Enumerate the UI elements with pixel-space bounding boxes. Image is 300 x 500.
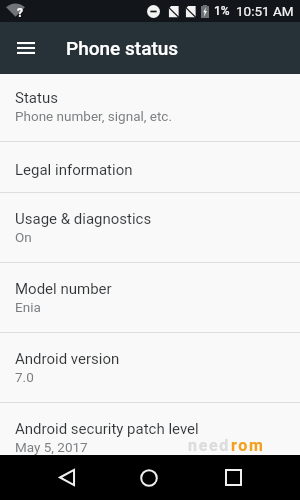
- button[interactable]: Back: [39, 455, 95, 500]
- staticText: Phone number, signal, etc.: [15, 108, 172, 124]
- button[interactable]: Android security patch level: [0, 403, 300, 472]
- staticText: May 5, 2017: [15, 439, 88, 455]
- button[interactable]: Open navigation drawer: [4, 26, 48, 70]
- staticText: 10:51 AM: [236, 3, 294, 19]
- button[interactable]: Recent apps: [205, 455, 261, 500]
- staticText: Android security patch level: [15, 420, 199, 438]
- staticText: Model number: [15, 280, 112, 298]
- staticText: On: [15, 229, 32, 245]
- button[interactable]: Model number: [0, 263, 300, 332]
- staticText: Enia: [15, 299, 41, 315]
- staticText: need: [188, 436, 231, 455]
- staticText: Phone status: [66, 37, 179, 59]
- staticText: Status: [15, 89, 58, 107]
- staticText: Usage & diagnostics: [15, 210, 152, 228]
- staticText: 7.0: [15, 369, 34, 385]
- staticText: Legal information: [15, 161, 133, 179]
- button[interactable]: Home: [121, 455, 177, 500]
- staticText: ?: [17, 6, 23, 20]
- staticText: 1%: [214, 4, 230, 18]
- button[interactable]: Legal information: [0, 142, 300, 192]
- button[interactable]: Usage & diagnostics: [0, 193, 300, 262]
- button[interactable]: Status: [0, 74, 300, 141]
- staticText: rom: [231, 436, 265, 455]
- button[interactable]: Android version: [0, 333, 300, 402]
- staticText: Android version: [15, 350, 120, 368]
